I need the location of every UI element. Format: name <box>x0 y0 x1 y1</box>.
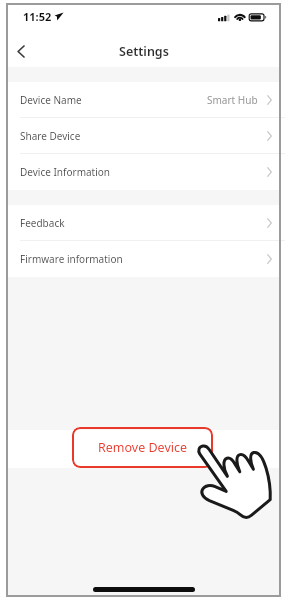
staticText: 11:52 <box>23 9 52 24</box>
staticText: Device Information <box>20 165 111 179</box>
button[interactable]: Firmware information <box>8 241 280 277</box>
button[interactable]: Device Information <box>8 154 280 190</box>
button[interactable]: Device Name <box>8 82 280 118</box>
button[interactable]: Back <box>6 36 36 66</box>
button[interactable]: Feedback <box>8 205 280 241</box>
button[interactable]: Remove Device <box>72 427 213 468</box>
staticText: Smart Hub <box>207 93 258 107</box>
staticText: Device Name <box>20 93 82 107</box>
staticText: Remove Device <box>98 439 188 456</box>
staticText: Feedback <box>20 216 65 230</box>
staticText: Settings <box>119 43 169 60</box>
staticText: Share Device <box>20 129 81 143</box>
button[interactable]: Share Device <box>8 118 280 154</box>
staticText: Firmware information <box>20 252 123 266</box>
